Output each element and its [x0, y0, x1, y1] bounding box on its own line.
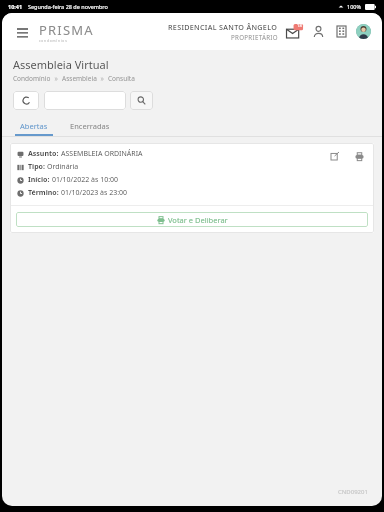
button[interactable]: Encerradas: [63, 118, 117, 134]
staticText: 100%: [347, 3, 362, 10]
staticText: Assunto:: [28, 149, 61, 159]
button[interactable]: Imprimir: [352, 149, 366, 163]
staticText: Assembleia: [62, 74, 97, 83]
staticText: Assembleia Virtual: [13, 57, 109, 72]
staticText: PROPRIETÁRIO: [231, 33, 278, 41]
staticText: Tipo:: [28, 162, 47, 172]
staticText: 10:41: [8, 3, 23, 10]
button[interactable]: Menu: [13, 23, 31, 41]
staticText: Término:: [28, 188, 61, 198]
staticText: 18: [297, 23, 302, 29]
staticText: Encerradas: [70, 121, 110, 131]
staticText: »: [51, 74, 62, 83]
staticText: PRISMA: [39, 21, 94, 39]
staticText: RESIDENCIAL SANTO ÂNGELO: [168, 22, 278, 32]
staticText: Votar e Deliberar: [168, 215, 228, 225]
button[interactable]: Mensagens: [285, 22, 304, 41]
staticText: Segunda-feira 28 de novembro: [28, 3, 108, 10]
staticText: 01/10/2023 às 23:00: [61, 188, 128, 198]
button[interactable]: Atualizar: [13, 91, 39, 110]
button[interactable]: Avatar: [356, 24, 371, 39]
staticText: 01/10/2022 às 10:00: [52, 175, 119, 185]
button[interactable]: [44, 91, 126, 110]
staticText: Início:: [28, 175, 52, 185]
button[interactable]: Condomínio: [333, 23, 350, 40]
staticText: Consulta: [108, 74, 135, 83]
button[interactable]: Votar e Deliberar: [16, 212, 368, 227]
button[interactable]: Abertas: [13, 118, 55, 136]
staticText: »: [97, 74, 108, 83]
staticText: Condomínio: [13, 74, 51, 83]
staticText: CND09201: [338, 488, 368, 496]
staticText: Abertas: [20, 121, 48, 131]
button[interactable]: Perfil: [310, 23, 327, 40]
button[interactable]: Abrir: [328, 149, 342, 163]
staticText: c o n d o m í n i o s: [39, 39, 67, 43]
button[interactable]: Pesquisar: [130, 91, 153, 110]
staticText: ASSEMBLEIA ORDINÁRIA: [61, 149, 143, 159]
staticText: Ordinária: [47, 162, 79, 172]
